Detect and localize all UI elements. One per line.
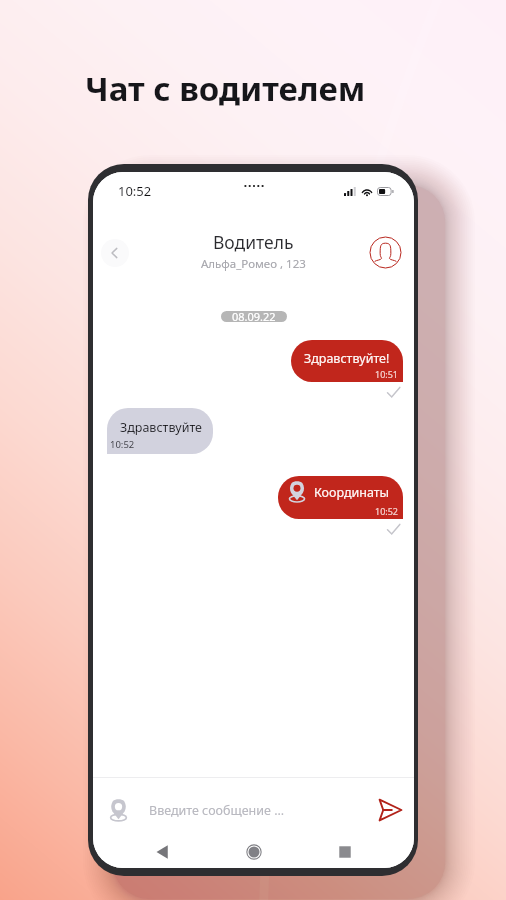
button[interactable]: Recents xyxy=(334,841,356,863)
staticText: 10:52 xyxy=(375,505,399,517)
staticText: Водитель xyxy=(213,230,294,254)
staticText: 10:52 xyxy=(110,438,135,451)
staticText: Чат с водителем xyxy=(85,66,366,111)
staticText: Здравствуйте! xyxy=(304,350,390,367)
button[interactable]: Home xyxy=(243,841,265,863)
staticText: Координаты xyxy=(314,484,390,501)
button[interactable]: Здравствуйте xyxy=(107,408,213,454)
staticText: Альфа_Ромео , 123 xyxy=(201,256,306,272)
button[interactable]: Attach location xyxy=(106,798,131,823)
staticText: 10:52 xyxy=(118,182,152,200)
button[interactable]: Send xyxy=(377,797,403,823)
button[interactable]: Координаты xyxy=(278,476,403,519)
button[interactable]: Back xyxy=(151,841,173,863)
staticText: Здравствуйте xyxy=(120,419,203,436)
staticText: 10:51 xyxy=(375,368,399,380)
button[interactable]: Здравствуйте! xyxy=(291,340,403,382)
staticText: 08.09.22 xyxy=(232,311,276,322)
button[interactable]: Profile xyxy=(369,236,402,269)
staticText: Введите сообщение ... xyxy=(149,802,285,819)
button[interactable]: Back xyxy=(101,239,129,267)
